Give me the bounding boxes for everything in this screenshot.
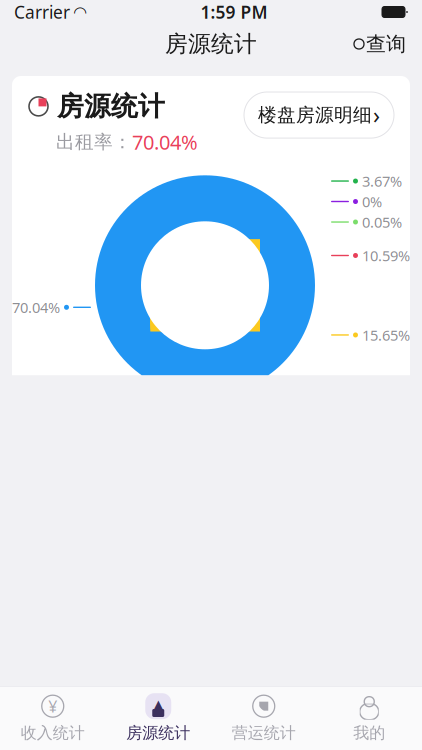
staticText: 0% [362, 192, 382, 211]
button[interactable]: 查询 [348, 26, 412, 62]
staticText: › [373, 100, 380, 130]
staticText: 3.67% [362, 171, 402, 191]
staticText: 出租率： [56, 131, 132, 153]
staticText: 10.59% [362, 246, 410, 265]
staticText: ▲ [154, 697, 163, 711]
staticText: 收入统计 [21, 723, 85, 743]
staticText: 查询 [366, 32, 406, 56]
staticText: 营运统计 [232, 723, 296, 743]
staticText: Carrier [14, 0, 70, 23]
staticText: 15.65% [362, 325, 410, 345]
staticText: ¥ [48, 695, 57, 717]
staticText: 房源统计 [165, 30, 257, 58]
staticText: 0.05% [362, 212, 402, 232]
button[interactable]: ▲ [105, 686, 211, 750]
button[interactable]: 营运统计 [211, 686, 316, 750]
button[interactable]: 我的 [316, 686, 422, 750]
button[interactable]: 楼盘房源明细 [244, 92, 394, 138]
staticText: 楼盘房源明细 [258, 104, 372, 126]
staticText: 70.04% [132, 129, 198, 155]
staticText: 房源统计 [126, 723, 190, 743]
button[interactable]: ¥ [0, 686, 105, 750]
staticText: 我的 [353, 723, 385, 743]
staticText: ◠ [74, 3, 86, 21]
staticText: 房源统计 [57, 90, 165, 123]
staticText: 70.04% [12, 298, 60, 317]
staticText: 1:59 PM [200, 0, 267, 23]
